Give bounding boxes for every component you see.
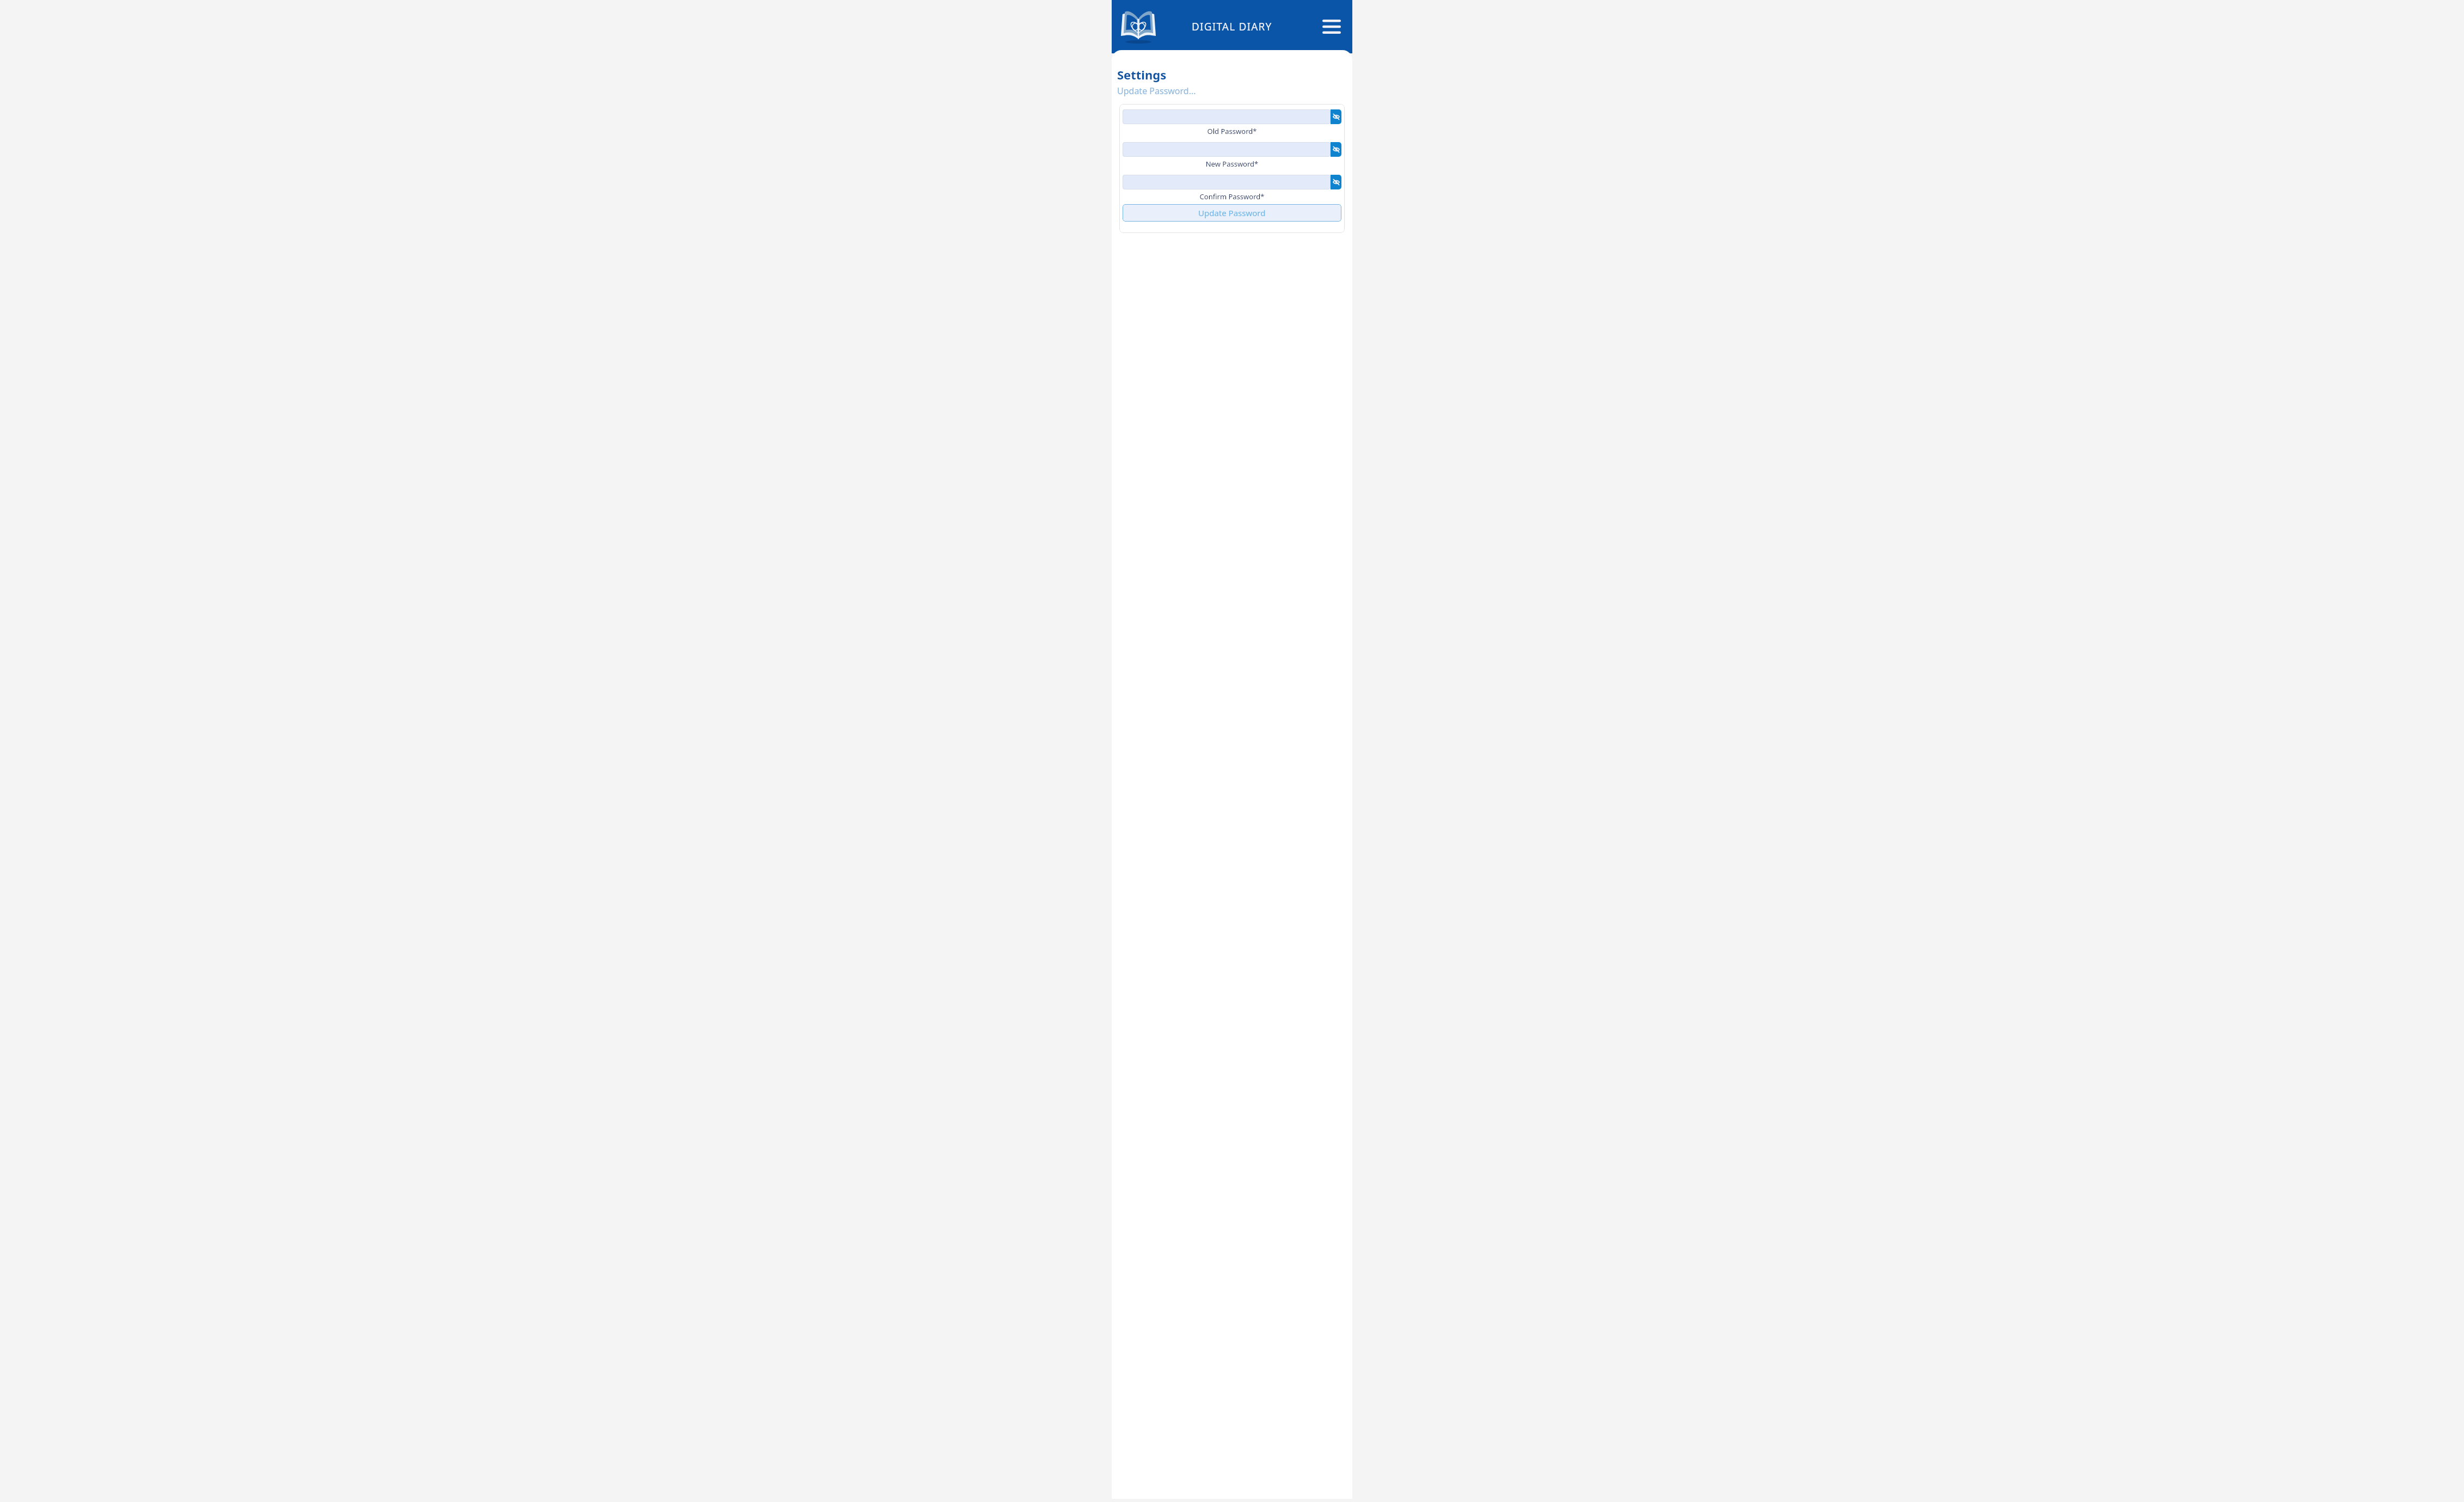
button[interactable]: [1123, 109, 1331, 124]
button[interactable]: Show Old Password*: [1331, 109, 1341, 124]
button[interactable]: Open navigation menu: [1320, 15, 1344, 39]
staticText: Update Password: [1198, 207, 1266, 218]
button[interactable]: [1123, 175, 1331, 189]
staticText: DIGITAL DIARY: [1192, 20, 1272, 34]
staticText: Old Password*: [1123, 126, 1341, 136]
staticText: Settings: [1117, 66, 1167, 83]
button[interactable]: Show New Password*: [1331, 142, 1341, 157]
button[interactable]: [1123, 142, 1331, 157]
staticText: New Password*: [1123, 159, 1341, 169]
other: Digital Diary logo: [1118, 7, 1159, 47]
staticText: Confirm Password*: [1123, 192, 1341, 201]
staticText: Update Password...: [1117, 85, 1196, 97]
button[interactable]: Show Confirm Password*: [1331, 175, 1341, 189]
button[interactable]: Update Password: [1123, 204, 1341, 222]
